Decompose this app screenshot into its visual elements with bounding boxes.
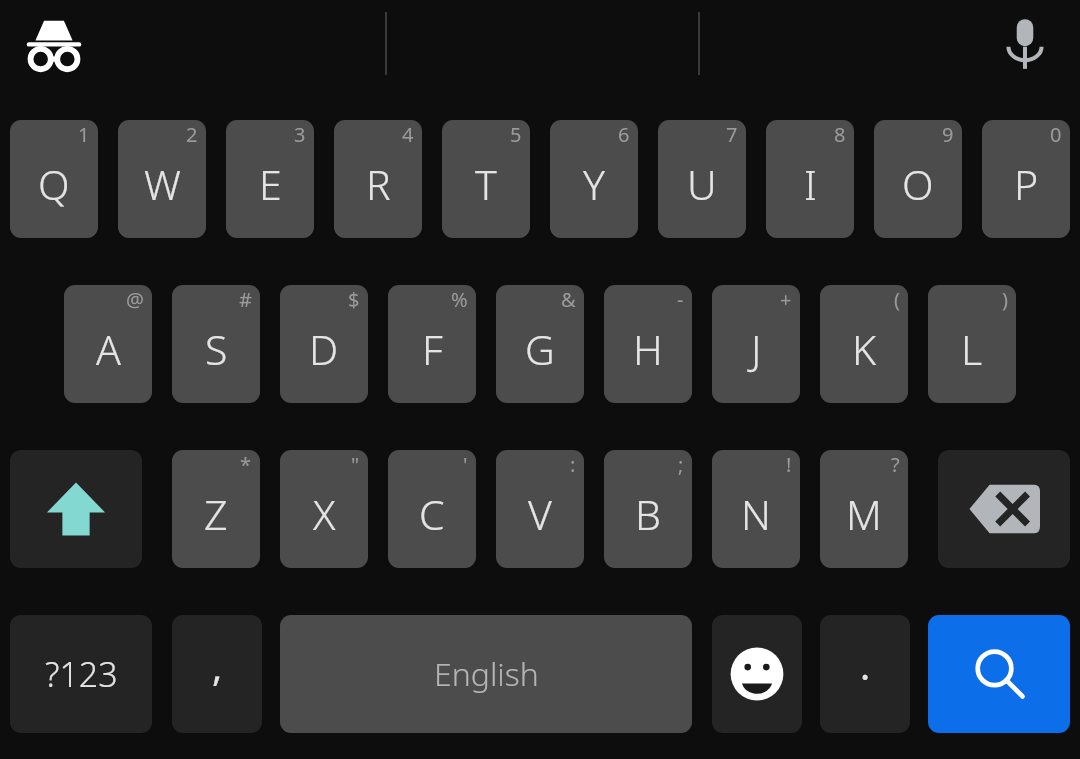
- button[interactable]: Voice input: [986, 6, 1064, 82]
- staticText: U: [687, 156, 717, 212]
- button[interactable]: Incognito mode: [14, 8, 94, 80]
- button[interactable]: Space: [280, 615, 692, 733]
- button[interactable]: R: [334, 120, 422, 238]
- staticText: W: [144, 156, 181, 212]
- button[interactable]: O: [874, 120, 962, 238]
- staticText: $: [348, 286, 360, 313]
- staticText: !: [786, 451, 792, 478]
- staticText: 2: [186, 121, 198, 148]
- staticText: 0: [1050, 121, 1062, 148]
- button[interactable]: Y: [550, 120, 638, 238]
- staticText: K: [852, 321, 877, 377]
- staticText: L: [961, 321, 983, 377]
- button[interactable]: X: [280, 450, 368, 568]
- staticText: M: [846, 486, 882, 542]
- staticText: R: [366, 156, 391, 212]
- staticText: Y: [583, 156, 605, 212]
- button[interactable]: W: [118, 120, 206, 238]
- staticText: E: [259, 156, 282, 212]
- staticText: F: [422, 321, 443, 377]
- staticText: ': [463, 451, 468, 478]
- button[interactable]: ,: [172, 615, 262, 733]
- staticText: X: [313, 486, 336, 542]
- staticText: J: [751, 321, 762, 377]
- button[interactable]: T: [442, 120, 530, 238]
- button[interactable]: .: [820, 615, 910, 733]
- staticText: 5: [510, 121, 522, 148]
- button[interactable]: Emoji: [712, 615, 802, 733]
- button[interactable]: G: [496, 285, 584, 403]
- button[interactable]: B: [604, 450, 692, 568]
- staticText: B: [635, 486, 661, 542]
- button[interactable]: F: [388, 285, 476, 403]
- staticText: N: [741, 486, 771, 542]
- staticText: %: [451, 286, 468, 313]
- button[interactable]: C: [388, 450, 476, 568]
- button[interactable]: J: [712, 285, 800, 403]
- staticText: I: [804, 156, 817, 212]
- staticText: Z: [204, 486, 228, 542]
- staticText: #: [239, 286, 252, 313]
- staticText: G: [525, 321, 555, 377]
- staticText: S: [205, 321, 228, 377]
- button[interactable]: D: [280, 285, 368, 403]
- button[interactable]: Search: [928, 615, 1070, 733]
- staticText: .: [860, 639, 871, 691]
- staticText: -: [677, 286, 684, 313]
- button[interactable]: A: [64, 285, 152, 403]
- button[interactable]: K: [820, 285, 908, 403]
- staticText: ;: [678, 451, 684, 478]
- staticText: 6: [618, 121, 630, 148]
- staticText: Q: [38, 156, 70, 212]
- staticText: ?123: [45, 651, 118, 697]
- staticText: ): [1002, 286, 1008, 313]
- staticText: D: [309, 321, 339, 377]
- button[interactable]: P: [982, 120, 1070, 238]
- button[interactable]: I: [766, 120, 854, 238]
- button[interactable]: M: [820, 450, 908, 568]
- staticText: ,: [212, 640, 223, 692]
- staticText: :: [570, 451, 576, 478]
- staticText: C: [419, 486, 445, 542]
- staticText: 7: [726, 121, 738, 148]
- staticText: 4: [402, 121, 414, 148]
- button[interactable]: U: [658, 120, 746, 238]
- button[interactable]: Q: [10, 120, 98, 238]
- staticText: A: [96, 321, 121, 377]
- button[interactable]: N: [712, 450, 800, 568]
- staticText: ": [351, 451, 360, 478]
- button[interactable]: ?123: [10, 615, 152, 733]
- staticText: *: [240, 451, 252, 478]
- staticText: English: [434, 652, 539, 696]
- button[interactable]: H: [604, 285, 692, 403]
- staticText: T: [475, 156, 497, 212]
- staticText: H: [633, 321, 663, 377]
- staticText: ?: [891, 451, 900, 478]
- button[interactable]: L: [928, 285, 1016, 403]
- staticText: P: [1014, 156, 1039, 212]
- staticText: 8: [834, 121, 846, 148]
- staticText: (: [894, 286, 900, 313]
- staticText: V: [528, 486, 552, 542]
- button[interactable]: Backspace: [938, 450, 1070, 568]
- staticText: &: [561, 286, 576, 313]
- staticText: @: [126, 286, 144, 313]
- staticText: 3: [294, 121, 306, 148]
- staticText: 1: [78, 121, 90, 148]
- staticText: O: [902, 156, 934, 212]
- button[interactable]: Z: [172, 450, 260, 568]
- staticText: 9: [942, 121, 954, 148]
- staticText: +: [780, 286, 792, 313]
- button[interactable]: S: [172, 285, 260, 403]
- button[interactable]: V: [496, 450, 584, 568]
- button[interactable]: Shift: [10, 450, 142, 568]
- button[interactable]: E: [226, 120, 314, 238]
